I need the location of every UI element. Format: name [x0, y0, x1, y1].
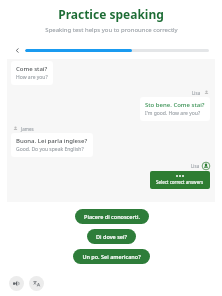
staticText: Lisa	[191, 163, 200, 169]
button[interactable]: Come stai?	[11, 61, 53, 85]
button[interactable]: Un po. Sei americano?	[73, 249, 150, 264]
staticText: Good. Do you speak English?	[16, 146, 84, 153]
staticText: How are you?	[16, 74, 48, 81]
button[interactable]: Back	[13, 46, 22, 55]
button[interactable]: Di dove sei?	[87, 229, 136, 244]
button[interactable]: Piacere di conoscerti.	[75, 209, 149, 224]
staticText: Speaking test helps you to pronounce cor…	[45, 26, 178, 34]
staticText: Di dove sei?	[96, 233, 127, 240]
staticText: Un po. Sei americano?	[82, 253, 141, 260]
staticText: Piacere di conoscerti.	[84, 213, 140, 220]
button[interactable]: Translate	[29, 276, 44, 291]
staticText: Buona. Lei parla inglese?	[16, 137, 88, 145]
button[interactable]: Buona. Lei parla inglese?	[11, 133, 93, 157]
staticText: Practice speaking	[58, 6, 164, 22]
staticText: James	[21, 126, 34, 132]
staticText: Select correct answers	[156, 179, 204, 185]
staticText: Come stai?	[16, 65, 48, 73]
staticText: Sto bene. Come stai?	[145, 101, 205, 109]
button[interactable]: Sto bene. Come stai?	[140, 97, 210, 121]
button[interactable]: Audio	[9, 276, 24, 291]
staticText: Lisa	[192, 90, 201, 96]
staticText: I'm good. How are you?	[145, 110, 201, 117]
button[interactable]: Select correct answers	[150, 171, 210, 189]
